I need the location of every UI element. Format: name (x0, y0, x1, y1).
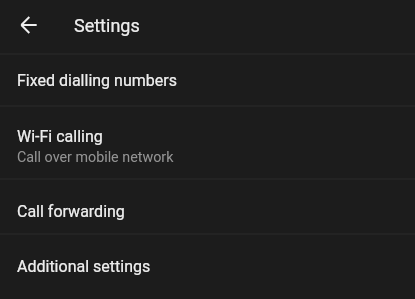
staticText: Fixed dialling numbers (17, 71, 177, 90)
staticText: Call forwarding (17, 202, 125, 221)
staticText: Call over mobile network (17, 149, 174, 166)
button[interactable]: Navigate up (7, 3, 51, 47)
button[interactable]: Wi-Fi calling (0, 107, 415, 178)
staticText: Settings (74, 15, 140, 36)
button[interactable]: Call forwarding (0, 180, 415, 233)
button[interactable]: Fixed dialling numbers (0, 55, 415, 105)
staticText: Additional settings (17, 257, 151, 276)
button[interactable]: Additional settings (0, 235, 415, 299)
staticText: Wi-Fi calling (17, 127, 103, 146)
